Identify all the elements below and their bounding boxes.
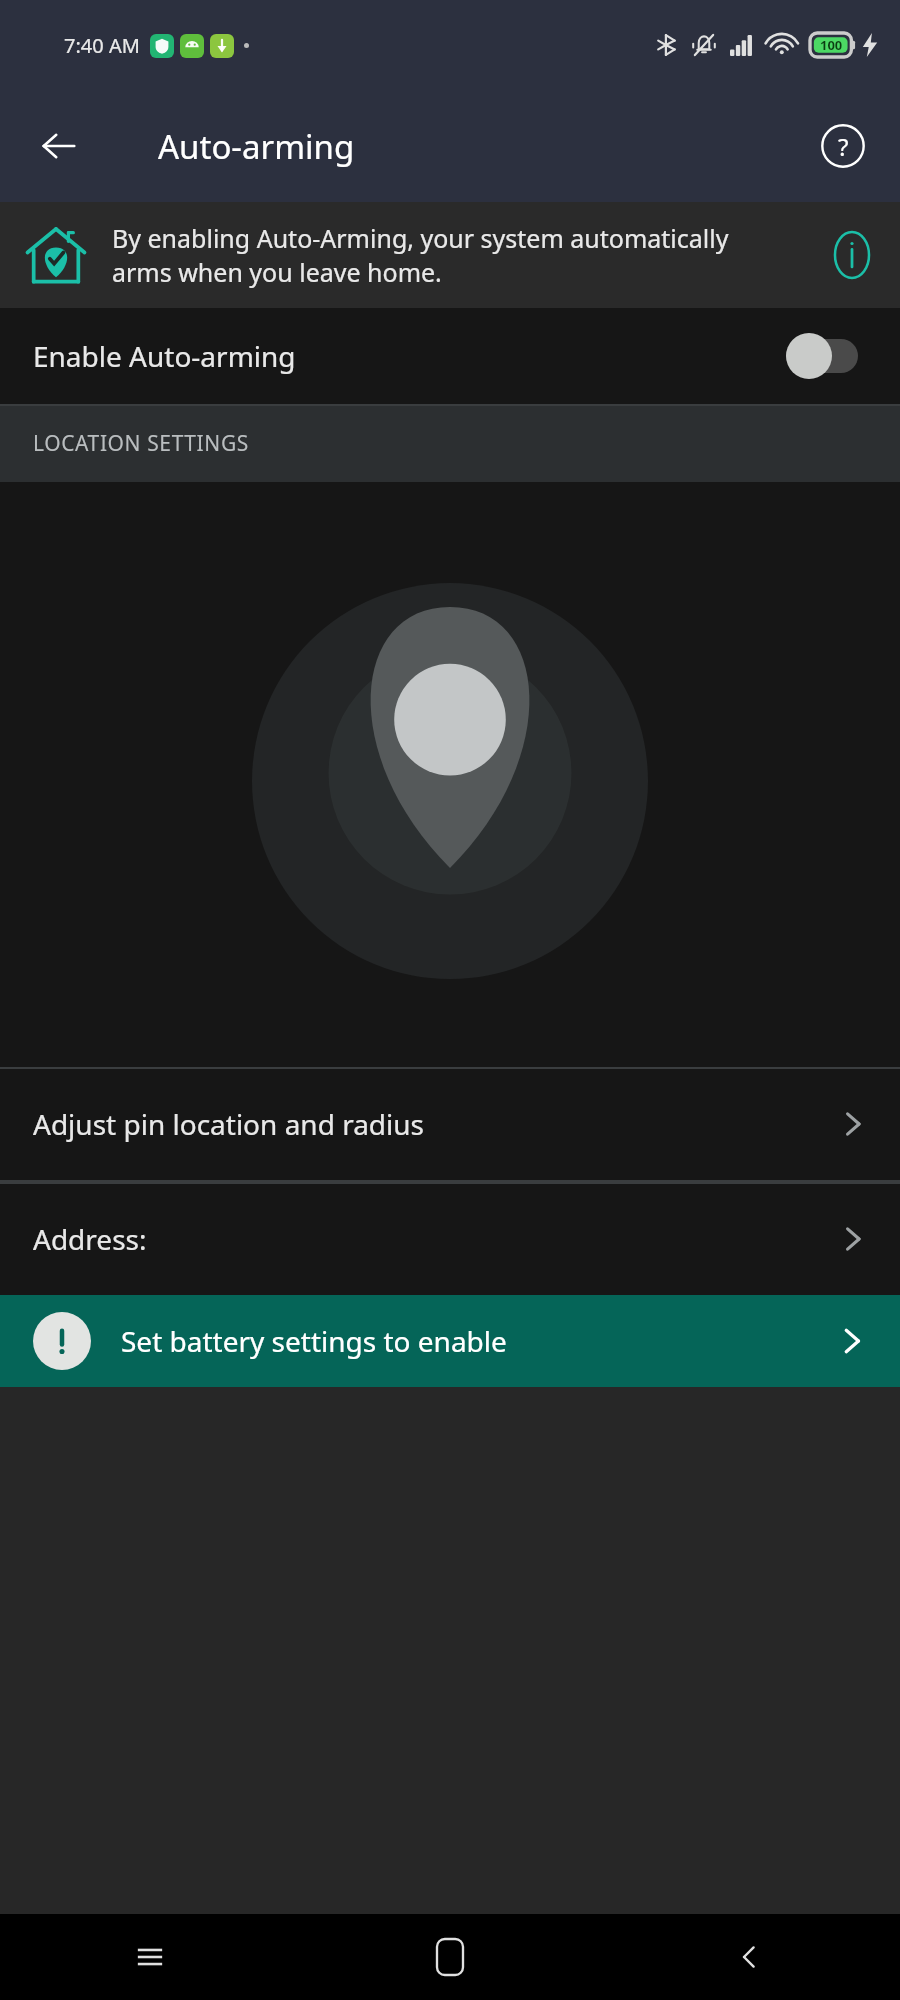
button[interactable]: Back (28, 115, 90, 177)
staticText: By enabling Auto-Arming, your system aut… (112, 221, 794, 290)
staticText: Enable Auto-arming (33, 337, 786, 375)
staticText: ? (838, 130, 849, 163)
button[interactable]: Adjust pin location and radius (0, 1067, 900, 1180)
button[interactable]: Information (804, 207, 900, 303)
button[interactable]: Recents (0, 1914, 300, 2000)
button[interactable]: Help (812, 115, 874, 177)
button[interactable]: Enable Auto-arming (0, 308, 900, 404)
button[interactable]: Back (600, 1914, 900, 2000)
button[interactable]: Address: (0, 1182, 900, 1295)
button[interactable]: Set battery settings to enable (0, 1295, 900, 1387)
staticText: Set battery settings to enable (121, 1322, 834, 1360)
button[interactable]: Home (300, 1914, 600, 2000)
staticText: Address: (33, 1220, 147, 1258)
staticText: LOCATION SETTINGS (33, 429, 249, 458)
staticText: Auto-arming (158, 124, 355, 169)
staticText: 100 (820, 36, 843, 54)
staticText: Adjust pin location and radius (33, 1105, 425, 1143)
staticText: 7:40 AM (64, 32, 140, 59)
